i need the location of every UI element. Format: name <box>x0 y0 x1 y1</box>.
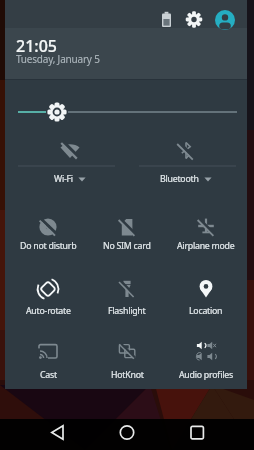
button[interactable]: Location <box>160 276 252 318</box>
staticText: Cast <box>40 369 57 381</box>
button[interactable]: Bluetooth <box>140 138 232 186</box>
staticText: Tuesday, January 5 <box>16 52 100 66</box>
button[interactable] <box>5 96 247 128</box>
button[interactable] <box>107 419 147 450</box>
staticText: Flashlight <box>108 305 146 317</box>
staticText: Wi-Fi <box>54 173 73 185</box>
staticText: Airplane mode <box>177 240 235 252</box>
staticText: No SIM card <box>103 240 151 252</box>
button[interactable] <box>215 10 235 30</box>
button[interactable] <box>37 419 77 450</box>
button[interactable]: HotKnot <box>81 338 173 382</box>
button[interactable]: Do not disturb <box>2 214 94 253</box>
staticText: Bluetooth <box>160 173 199 185</box>
button[interactable]: Wi-Fi <box>24 137 116 186</box>
staticText: Location <box>189 305 223 317</box>
button[interactable]: Airplane mode <box>160 214 252 253</box>
staticText: Do not disturb <box>20 240 77 252</box>
staticText: Auto-rotate <box>26 305 71 317</box>
button[interactable]: Audio profiles <box>160 338 252 382</box>
staticText: HotKnot <box>111 369 144 381</box>
button[interactable] <box>177 419 217 450</box>
button[interactable]: Cast <box>2 338 94 382</box>
button[interactable]: Flashlight <box>81 276 173 318</box>
button[interactable]: No SIM card <box>81 214 173 253</box>
button[interactable]: Auto-rotate <box>2 276 94 318</box>
staticText: 21:05 <box>16 35 57 57</box>
staticText: Audio profiles <box>179 369 234 381</box>
